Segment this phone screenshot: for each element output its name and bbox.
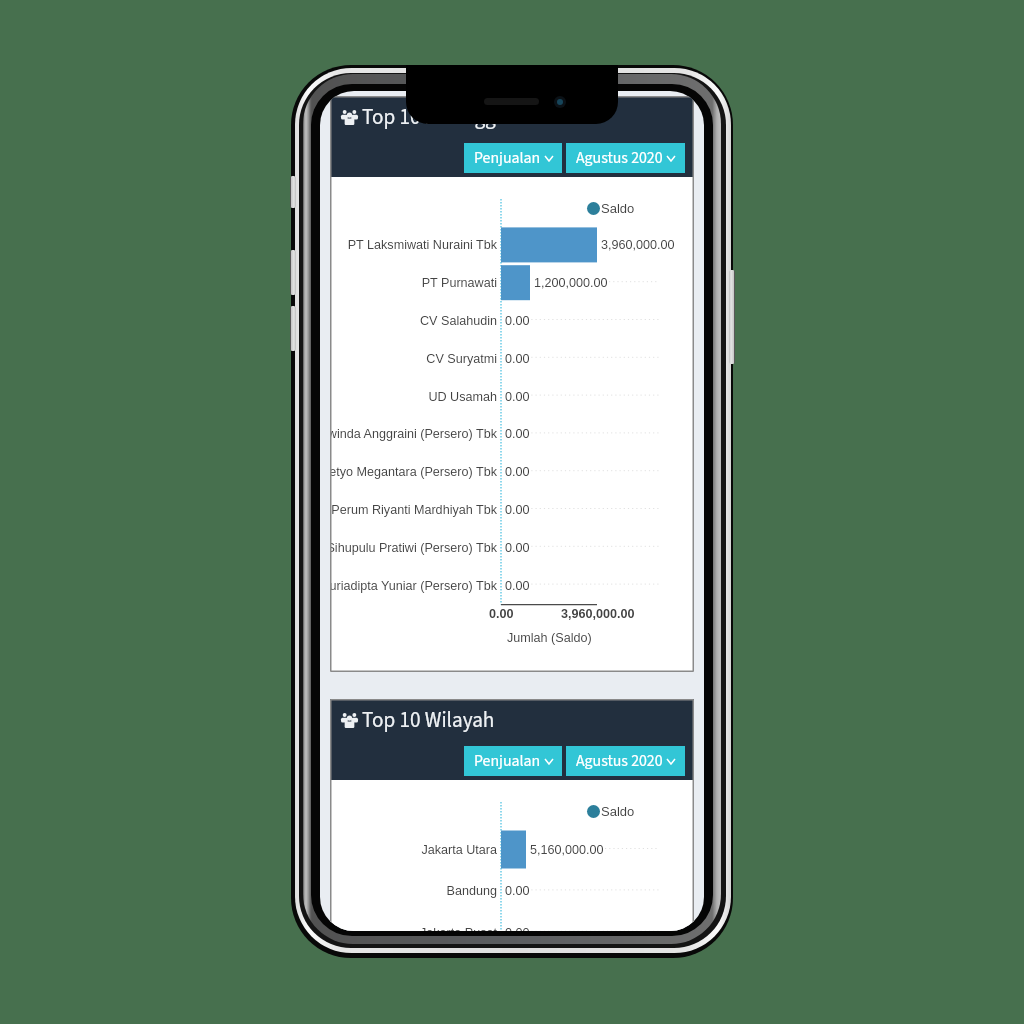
staticText: Jumlah (Saldo) <box>507 631 592 645</box>
staticText: 0.00 <box>505 579 530 593</box>
staticText: UD Usamah <box>428 390 497 404</box>
button[interactable]: Agustus 2020 <box>566 143 685 173</box>
staticText: Agustus 2020 <box>576 750 663 772</box>
staticText: CV Salahudin <box>419 314 497 328</box>
staticText: Top 10 Pelanggan <box>362 102 518 132</box>
staticText: 0.00 <box>505 503 530 517</box>
staticText: 0.00 <box>505 541 530 555</box>
staticText: Perum Hadiwinda Anggraini (Persero) Tbk <box>330 427 497 441</box>
staticText: 0.00 <box>505 427 530 441</box>
staticText: 0.00 <box>505 926 530 931</box>
staticText: 3,960,000.00 <box>601 238 675 252</box>
staticText: Agustus 2020 <box>576 147 663 169</box>
staticText: Jakarta Utara <box>421 843 497 857</box>
staticText: Bandung <box>446 884 497 898</box>
button[interactable]: Penjualan <box>464 143 562 173</box>
staticText: Penjualan <box>474 750 541 772</box>
staticText: PT Prasetyo Megantara (Persero) Tbk <box>330 465 497 479</box>
button[interactable]: Penjualan <box>464 746 562 776</box>
staticText: CV Suryatmi <box>426 352 497 366</box>
button[interactable]: Agustus 2020 <box>566 746 685 776</box>
staticText: PT Purnawati <box>421 276 497 290</box>
staticText: 0.00 <box>489 607 514 621</box>
staticText: PT Wijayakusuma Suriadipta Yuniar (Perse… <box>330 579 497 593</box>
staticText: 5,160,000.00 <box>530 843 604 857</box>
staticText: Perum Riyanti Mardhiyah Tbk <box>331 503 497 517</box>
staticText: Saldo <box>601 201 635 216</box>
staticText: Saldo <box>601 804 635 819</box>
staticText: Top 10 Wilayah <box>362 705 495 735</box>
staticText: Penjualan <box>474 147 541 169</box>
staticText: PT Laksmiwati Nuraini Tbk <box>347 238 497 252</box>
staticText: 1,200,000.00 <box>534 276 608 290</box>
staticText: 0.00 <box>505 884 530 898</box>
staticText: 0.00 <box>505 352 530 366</box>
staticText: 0.00 <box>505 390 530 404</box>
staticText: 0.00 <box>505 314 530 328</box>
staticText: Jakarta Pusat <box>419 926 497 931</box>
staticText: PT Sianipar Sihupulu Pratiwi (Persero) T… <box>330 541 497 555</box>
staticText: 3,960,000.00 <box>561 607 635 621</box>
staticText: 0.00 <box>505 465 530 479</box>
